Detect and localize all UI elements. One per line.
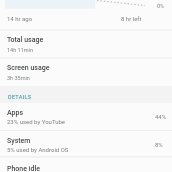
button[interactable]: Apps: [0, 107, 172, 127]
staticText: 3h 35min: [7, 75, 30, 81]
staticText: 23% used by YouTube: [7, 118, 66, 125]
button[interactable]: Total usage: [0, 34, 172, 55]
button[interactable]: Phone idle: [0, 163, 172, 172]
staticText: Phone idle: [7, 165, 41, 172]
button[interactable]: System: [0, 135, 172, 155]
staticText: 14h 11min: [7, 47, 33, 53]
staticText: 8 hr left: [121, 15, 142, 22]
staticText: 5% used by Android OS: [7, 146, 69, 153]
staticText: Total usage: [7, 36, 44, 44]
staticText: Apps: [7, 109, 23, 117]
staticText: 14 hr ago: [7, 15, 33, 22]
staticText: 0%: [157, 3, 165, 9]
staticText: Screen usage: [7, 64, 50, 72]
staticText: 8%: [155, 141, 163, 148]
staticText: System: [7, 137, 31, 145]
button[interactable]: Screen usage: [0, 62, 172, 83]
staticText: DETAILS: [8, 94, 32, 100]
staticText: 44%: [155, 113, 167, 120]
